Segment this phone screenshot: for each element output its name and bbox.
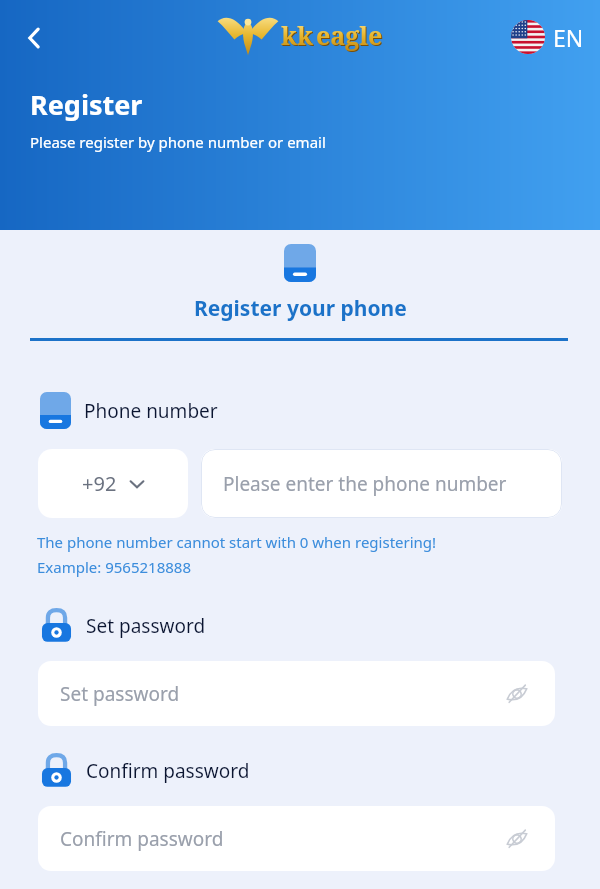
button[interactable]: Set password [38, 661, 555, 726]
staticText: eagle [316, 18, 383, 52]
staticText: Register [30, 86, 143, 123]
staticText: Register your phone [194, 294, 407, 323]
staticText: Please register by phone number or email [30, 132, 326, 152]
staticText: kk [281, 18, 313, 52]
button[interactable]: Please enter the phone number [201, 449, 562, 518]
staticText: EN [553, 22, 584, 53]
button[interactable]: Back [10, 14, 58, 62]
staticText: The phone number cannot start with 0 whe… [37, 532, 437, 552]
staticText: Confirm password [60, 826, 224, 852]
button[interactable]: Register your phone [0, 294, 600, 323]
staticText: Confirm password [86, 758, 250, 784]
button[interactable]: Confirm password [38, 806, 555, 871]
staticText: Example: 9565218888 [37, 557, 191, 577]
staticText: Set password [86, 613, 206, 639]
staticText: Set password [60, 681, 180, 707]
staticText: eagle [317, 19, 384, 53]
button[interactable]: Show password [501, 678, 533, 710]
button[interactable]: Show password [501, 823, 533, 855]
staticText: Phone number [84, 398, 218, 424]
staticText: Please enter the phone number [223, 471, 507, 497]
button[interactable]: +92 [38, 449, 188, 518]
staticText: +92 [82, 470, 117, 497]
button[interactable]: EN [505, 16, 590, 58]
staticText: kk [282, 19, 314, 53]
